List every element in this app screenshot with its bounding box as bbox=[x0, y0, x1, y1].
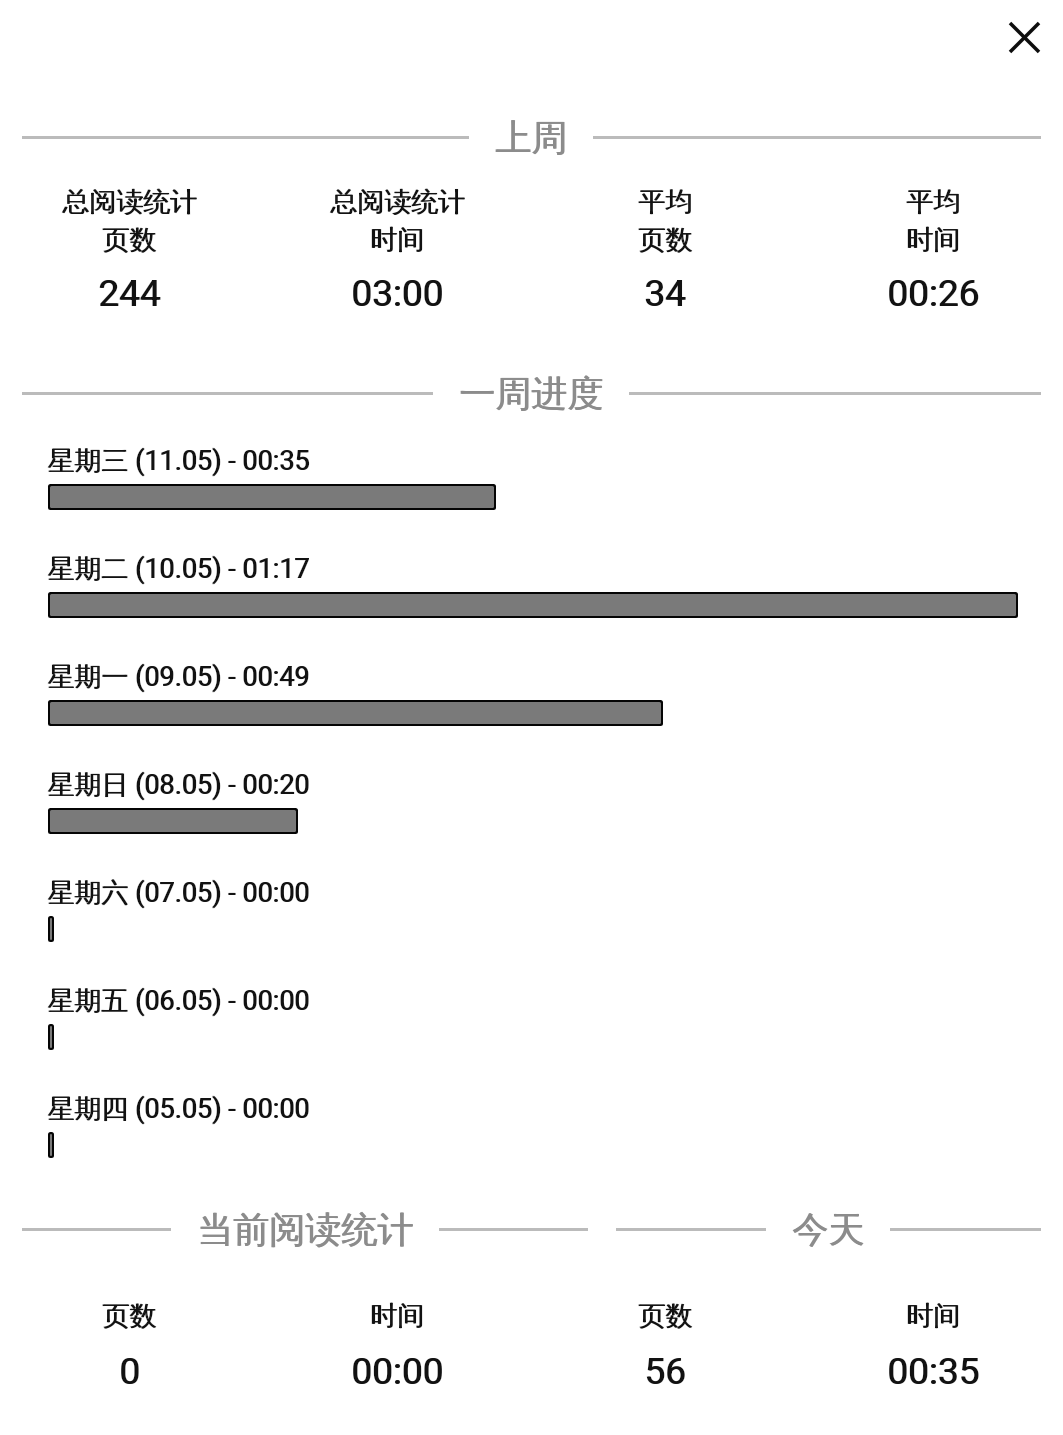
staticText: 时间 bbox=[907, 223, 961, 257]
staticText: 星期四 (05.05) - 00:00 bbox=[47, 1092, 310, 1126]
staticText: 时间 bbox=[371, 1299, 425, 1333]
staticText: 页数 bbox=[103, 223, 157, 257]
staticText: 244 bbox=[98, 272, 161, 315]
staticText: 00:26 bbox=[888, 272, 981, 315]
staticText: 00:00 bbox=[352, 1350, 445, 1393]
staticText: 星期日 (08.05) - 00:20 bbox=[47, 768, 310, 802]
staticText: 星期一 (09.05) - 00:49 bbox=[47, 660, 310, 694]
staticText: 上周 bbox=[495, 115, 567, 160]
staticText: 页数 bbox=[638, 223, 692, 257]
staticText: 时间 bbox=[906, 1299, 960, 1333]
staticText: 页数 bbox=[103, 1299, 157, 1333]
staticText: 0 bbox=[119, 1350, 140, 1393]
staticText: 星期五 (06.05) - 00:00 bbox=[47, 984, 310, 1018]
staticText: 56 bbox=[644, 1350, 686, 1393]
staticText: 平均 bbox=[639, 185, 693, 219]
staticText: 页数 bbox=[638, 1299, 692, 1333]
staticText: 00:26 bbox=[887, 272, 980, 315]
staticText: 星期二 (10.05) - 01:17 bbox=[48, 552, 311, 586]
staticText: 页数 bbox=[102, 223, 156, 257]
staticText: 时间 bbox=[371, 223, 425, 257]
staticText: 00:35 bbox=[888, 1350, 981, 1393]
staticText: 03:00 bbox=[351, 272, 444, 315]
staticText: 当前阅读统计 bbox=[198, 1207, 414, 1252]
staticText: 星期六 (07.05) - 00:00 bbox=[48, 876, 311, 910]
staticText: 平均 bbox=[638, 185, 692, 219]
staticText: 03:00 bbox=[352, 272, 445, 315]
staticText: 34 bbox=[645, 272, 687, 315]
staticText: 今天 bbox=[792, 1207, 864, 1252]
staticText: 总阅读统计 bbox=[63, 185, 198, 219]
staticText: 星期五 (06.05) - 00:00 bbox=[48, 984, 311, 1018]
staticText: 时间 bbox=[906, 223, 960, 257]
staticText: 今天 bbox=[793, 1207, 865, 1252]
staticText: 244 bbox=[99, 272, 162, 315]
staticText: 一周进度 bbox=[460, 371, 604, 416]
button[interactable]: Close bbox=[988, 1, 1060, 73]
staticText: 总阅读统计 bbox=[330, 185, 465, 219]
staticText: 星期二 (10.05) - 01:17 bbox=[47, 552, 310, 586]
staticText: 00:35 bbox=[887, 1350, 980, 1393]
staticText: 页数 bbox=[639, 1299, 693, 1333]
staticText: 页数 bbox=[102, 1299, 156, 1333]
staticText: 星期一 (09.05) - 00:49 bbox=[48, 660, 311, 694]
staticText: 星期三 (11.05) - 00:35 bbox=[47, 444, 310, 478]
staticText: 时间 bbox=[907, 1299, 961, 1333]
staticText: 34 bbox=[644, 272, 686, 315]
staticText: 页数 bbox=[639, 223, 693, 257]
staticText: 平均 bbox=[907, 185, 961, 219]
staticText: 星期四 (05.05) - 00:00 bbox=[48, 1092, 311, 1126]
staticText: 星期日 (08.05) - 00:20 bbox=[48, 768, 311, 802]
staticText: 一周进度 bbox=[459, 371, 603, 416]
staticText: 上周 bbox=[496, 115, 568, 160]
staticText: 时间 bbox=[370, 1299, 424, 1333]
staticText: 总阅读统计 bbox=[331, 185, 466, 219]
staticText: 平均 bbox=[906, 185, 960, 219]
staticText: 星期六 (07.05) - 00:00 bbox=[47, 876, 310, 910]
staticText: 56 bbox=[645, 1350, 687, 1393]
staticText: 当前阅读统计 bbox=[197, 1207, 413, 1252]
staticText: 00:00 bbox=[351, 1350, 444, 1393]
staticText: 时间 bbox=[370, 223, 424, 257]
staticText: 星期三 (11.05) - 00:35 bbox=[48, 444, 311, 478]
staticText: 总阅读统计 bbox=[62, 185, 197, 219]
staticText: 0 bbox=[120, 1350, 141, 1393]
